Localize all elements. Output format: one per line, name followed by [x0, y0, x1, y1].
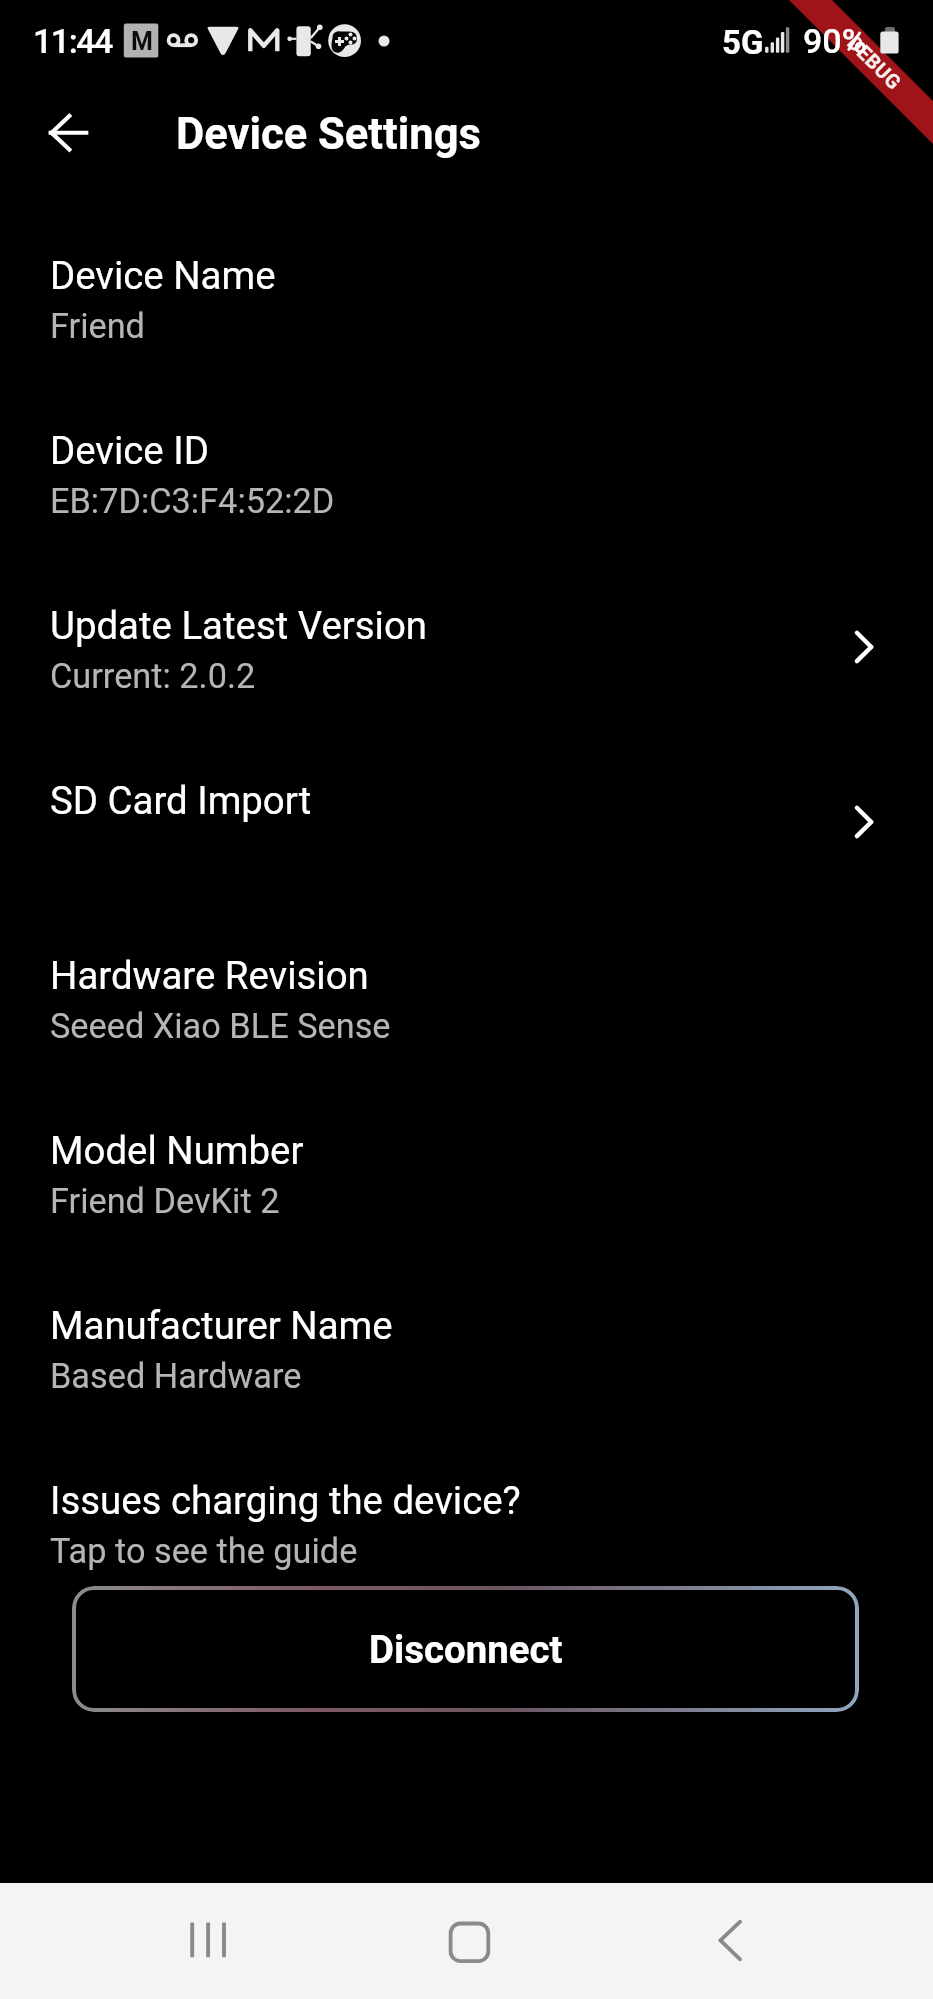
- button[interactable]: Device Name: [0, 221, 933, 363]
- button[interactable]: Recent apps: [162, 1902, 254, 1980]
- staticText: Tap to see the guide: [50, 1531, 358, 1571]
- staticText: Seeed Xiao BLE Sense: [50, 1006, 391, 1046]
- staticText: Device Settings: [176, 109, 481, 160]
- button[interactable]: Model Number: [0, 1096, 933, 1238]
- staticText: Friend: [50, 306, 145, 346]
- staticText: Issues charging the device?: [50, 1478, 521, 1523]
- button[interactable]: SD Card Import: [0, 746, 933, 856]
- staticText: Manufacturer Name: [50, 1303, 393, 1348]
- button[interactable]: Home: [424, 1902, 516, 1980]
- staticText: Hardware Revision: [50, 953, 369, 998]
- button[interactable]: Issues charging the device?: [0, 1446, 933, 1588]
- staticText: 90%: [803, 21, 867, 61]
- button[interactable]: Manufacturer Name: [0, 1271, 933, 1413]
- staticText: Current: 2.0.2: [50, 656, 256, 696]
- staticText: Disconnect: [369, 1627, 563, 1672]
- button[interactable]: Hardware Revision: [0, 921, 933, 1063]
- staticText: 11:44: [33, 21, 112, 61]
- button[interactable]: Back: [684, 1902, 776, 1980]
- staticText: Based Hardware: [50, 1356, 302, 1396]
- staticText: SD Card Import: [50, 778, 312, 823]
- button[interactable]: Device ID: [0, 396, 933, 538]
- staticText: Friend DevKit 2: [50, 1181, 280, 1221]
- staticText: Update Latest Version: [50, 603, 428, 648]
- staticText: Device ID: [50, 428, 209, 473]
- staticText: Device Name: [50, 253, 276, 298]
- staticText: EB:7D:C3:F4:52:2D: [50, 481, 335, 521]
- staticText: M: [131, 27, 153, 56]
- staticText: DEBUG: [843, 31, 906, 94]
- staticText: Model Number: [50, 1128, 304, 1173]
- button[interactable]: Back: [20, 104, 116, 162]
- button[interactable]: Disconnect: [72, 1586, 859, 1712]
- staticText: 5G: [722, 23, 764, 62]
- button[interactable]: Update Latest Version: [0, 571, 933, 713]
